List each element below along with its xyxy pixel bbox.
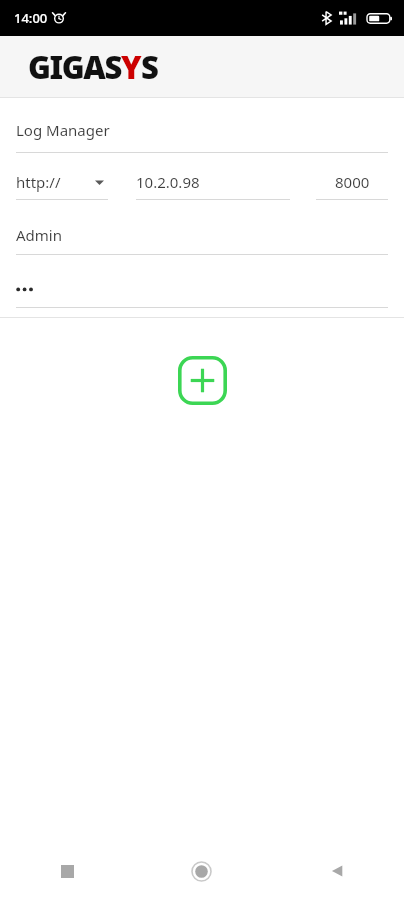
button[interactable]: 8000 (316, 165, 388, 200)
button[interactable]: Recents (0, 842, 134, 900)
staticText: Log Manager (16, 120, 110, 140)
staticText: S (141, 46, 158, 88)
button[interactable]: Home (134, 842, 269, 900)
staticText: http:// (16, 172, 61, 192)
staticText: 8000 (335, 172, 370, 192)
staticText: Admin (16, 225, 62, 245)
staticText: Y (121, 46, 141, 88)
button[interactable]: Log Manager (16, 108, 388, 153)
button[interactable]: http:// (16, 165, 108, 200)
staticText: GIGAS (28, 46, 121, 88)
button[interactable] (16, 269, 388, 308)
button[interactable]: Add server (178, 356, 227, 405)
button[interactable]: Back (269, 842, 404, 900)
button[interactable]: 10.2.0.98 (136, 165, 290, 200)
staticText: 10.2.0.98 (136, 172, 200, 192)
button[interactable]: Admin (16, 216, 388, 255)
staticText: 14:00 (14, 9, 48, 27)
